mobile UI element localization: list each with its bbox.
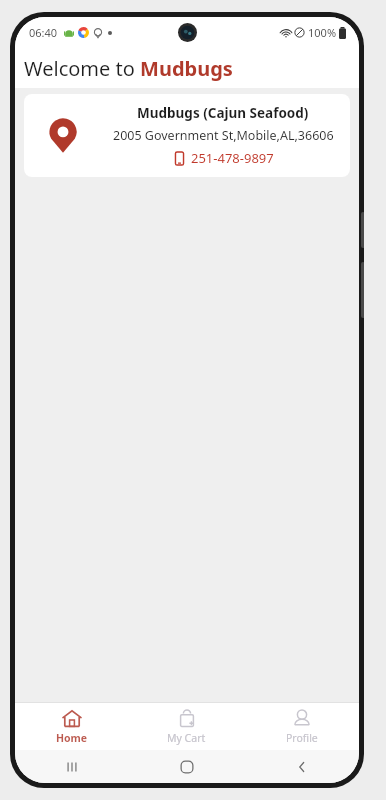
staticText: 251-478-9897 — [191, 149, 274, 167]
button[interactable]: Home — [129, 750, 244, 783]
staticText: 06:40 — [29, 25, 58, 40]
staticText: 2005 Government St,Mobile,AL,36606 — [113, 127, 334, 144]
staticText: Mudbugs (Cajun Seafood) — [137, 104, 309, 122]
button[interactable]: My Cart — [129, 703, 244, 750]
staticText: Welcome to Mudbugs — [24, 55, 233, 82]
button[interactable]: Home — [15, 703, 129, 750]
staticText: 100% — [308, 25, 337, 40]
button[interactable]: Back — [244, 750, 359, 783]
button[interactable]: Mudbugs (Cajun Seafood) — [24, 94, 350, 177]
other: Home — [62, 708, 82, 728]
button[interactable]: Recents — [15, 750, 129, 783]
staticText: Home — [56, 731, 88, 745]
button[interactable]: Profile — [244, 703, 359, 750]
button[interactable]: 251-478-9897 — [173, 149, 274, 167]
other: My Cart — [177, 708, 197, 728]
other: Profile — [292, 708, 312, 728]
staticText: Profile — [286, 731, 318, 745]
staticText: My Cart — [167, 731, 206, 745]
